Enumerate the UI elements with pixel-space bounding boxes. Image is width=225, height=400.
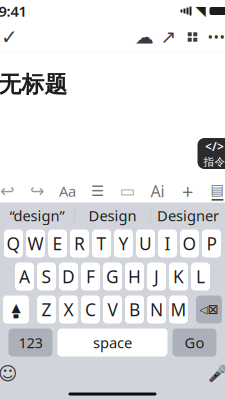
staticText: ◁ xyxy=(199,303,207,315)
button[interactable]: B xyxy=(125,295,144,323)
staticText: D xyxy=(62,265,75,288)
staticText: Designer xyxy=(157,206,219,225)
button[interactable]: F xyxy=(81,262,100,290)
button[interactable]: space xyxy=(57,328,167,356)
staticText: Design xyxy=(88,206,136,225)
staticText: B xyxy=(129,298,140,321)
staticText: ▭ xyxy=(120,182,135,200)
button[interactable]: More xyxy=(204,24,225,50)
button[interactable]: Sync xyxy=(132,24,156,50)
staticText: ↗ xyxy=(160,26,176,48)
staticText: ⊠ xyxy=(207,302,218,317)
button[interactable]: O xyxy=(180,229,199,257)
button[interactable]: Delete xyxy=(196,295,222,323)
button[interactable]: Y xyxy=(114,229,133,257)
button[interactable]: “design” xyxy=(0,203,74,227)
button[interactable]: P xyxy=(202,229,221,257)
button[interactable]: E xyxy=(48,229,67,257)
button[interactable]: 123 xyxy=(8,328,52,356)
button[interactable]: A xyxy=(15,262,34,290)
staticText: O xyxy=(182,232,196,255)
staticText: M xyxy=(170,298,186,321)
button[interactable]: R xyxy=(70,229,89,257)
staticText: A xyxy=(19,265,30,288)
staticText: Q xyxy=(6,232,20,255)
button[interactable]: Dictation xyxy=(204,362,225,384)
button[interactable]: Go xyxy=(172,328,216,356)
staticText: space xyxy=(93,333,132,352)
staticText: P xyxy=(206,232,216,255)
button[interactable]: H xyxy=(125,262,144,290)
button[interactable]: N xyxy=(147,295,166,323)
staticText: X xyxy=(63,298,73,321)
button[interactable]: C xyxy=(81,295,100,323)
staticText: Go xyxy=(184,333,204,352)
staticText: ••• xyxy=(207,27,225,47)
button[interactable]: T xyxy=(92,229,111,257)
button[interactable]: Redo xyxy=(26,179,48,203)
button[interactable]: Share xyxy=(156,24,180,50)
staticText: E xyxy=(52,232,62,255)
button[interactable]: Text style xyxy=(56,179,78,203)
button[interactable]: L xyxy=(191,262,210,290)
button[interactable]: Designer xyxy=(150,203,225,227)
staticText: Y xyxy=(118,232,128,255)
button[interactable]: Hide keyboard xyxy=(206,179,225,203)
staticText: </> xyxy=(205,138,224,154)
button[interactable]: W xyxy=(26,229,45,257)
staticText: 9:41 xyxy=(0,1,26,21)
staticText: N xyxy=(150,298,163,321)
button[interactable]: J xyxy=(147,262,166,290)
button[interactable]: I xyxy=(158,229,177,257)
button[interactable]: 指令 xyxy=(197,138,225,169)
staticText: Z xyxy=(41,298,51,321)
staticText: J xyxy=(154,265,159,288)
staticText: 指令 xyxy=(203,155,225,168)
staticText: ↪ xyxy=(30,181,45,201)
button[interactable]: M xyxy=(169,295,188,323)
button[interactable]: Undo xyxy=(0,179,18,203)
staticText: ▤ xyxy=(210,181,224,198)
staticText: G xyxy=(106,265,119,288)
button[interactable]: U xyxy=(136,229,155,257)
staticText: ✓ xyxy=(1,26,18,48)
staticText: V xyxy=(107,298,117,321)
staticText: ☺ xyxy=(0,363,17,384)
staticText: ☰ xyxy=(91,183,104,199)
staticText: H xyxy=(128,265,141,288)
button[interactable]: Shift xyxy=(3,295,29,323)
button[interactable]: AI xyxy=(146,179,168,203)
staticText: C xyxy=(85,298,96,321)
staticText: “design” xyxy=(9,206,64,225)
staticText: Aa xyxy=(59,181,76,201)
button[interactable]: Q xyxy=(4,229,23,257)
staticText: 无标题 xyxy=(0,70,67,98)
staticText: 🎤 xyxy=(207,364,225,383)
button[interactable]: Emoji xyxy=(0,362,20,384)
staticText: Ai xyxy=(150,180,164,202)
button[interactable]: Layout xyxy=(180,24,204,50)
staticText: 123 xyxy=(18,333,42,352)
button[interactable]: S xyxy=(37,262,56,290)
staticText: K xyxy=(173,265,184,288)
button[interactable]: Z xyxy=(37,295,56,323)
button[interactable]: Comment xyxy=(116,179,138,203)
staticText: + xyxy=(182,178,193,204)
staticText: ◥ xyxy=(195,3,205,18)
button[interactable]: D xyxy=(59,262,78,290)
staticText: U xyxy=(139,232,152,255)
staticText: I xyxy=(164,232,170,255)
button[interactable]: List xyxy=(86,179,108,203)
button[interactable]: X xyxy=(59,295,78,323)
button[interactable]: K xyxy=(169,262,188,290)
staticText: W xyxy=(27,232,43,255)
staticText: ☁ xyxy=(135,26,154,48)
button[interactable]: V xyxy=(103,295,122,323)
button[interactable]: G xyxy=(103,262,122,290)
staticText: L xyxy=(196,265,205,288)
button[interactable]: Done xyxy=(0,24,22,50)
staticText: T xyxy=(96,232,106,255)
staticText: R xyxy=(74,232,85,255)
button[interactable]: Insert xyxy=(176,179,198,203)
button[interactable]: Design xyxy=(75,203,150,227)
